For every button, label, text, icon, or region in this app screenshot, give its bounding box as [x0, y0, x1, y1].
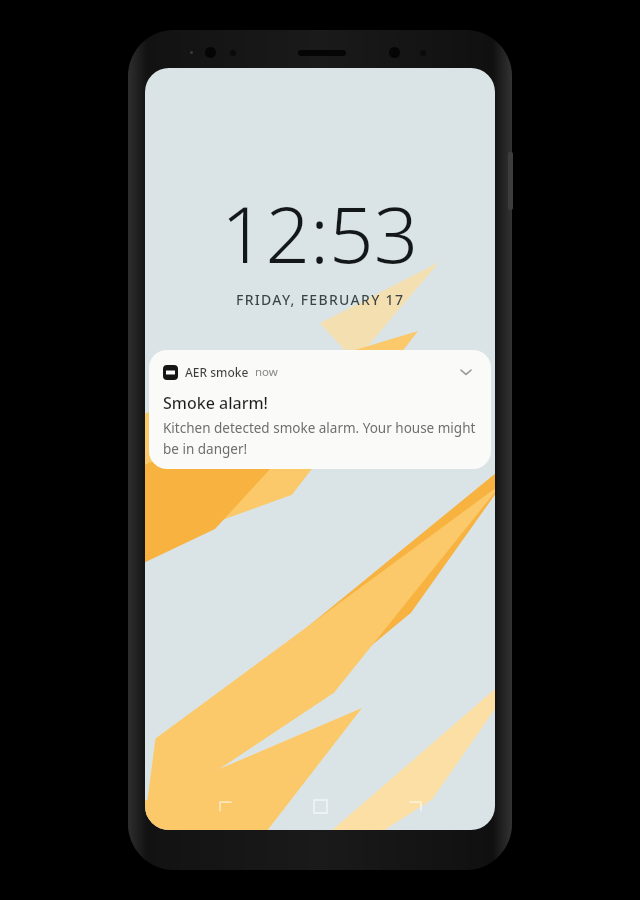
staticText: Kitchen detected smoke alarm. Your house… [163, 419, 477, 458]
staticText: 12:53 [221, 180, 419, 286]
staticText: AER smoke [185, 364, 249, 380]
button[interactable]: Back [399, 788, 435, 824]
staticText: FRIDAY, FEBRUARY 17 [236, 290, 405, 309]
button[interactable]: Expand notification [455, 361, 477, 383]
button[interactable]: Recent apps [206, 788, 242, 824]
button[interactable]: Home [302, 788, 338, 824]
staticText: now [255, 364, 278, 380]
staticText: Smoke alarm! [163, 392, 268, 414]
button[interactable]: AER smoke [149, 350, 491, 469]
